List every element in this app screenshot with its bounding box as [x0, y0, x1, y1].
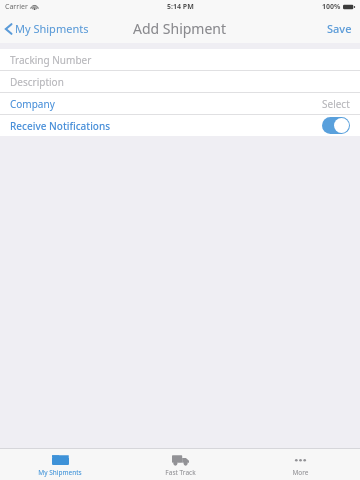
- staticText: Receive Notifications: [10, 119, 111, 133]
- staticText: My Shipments: [38, 468, 82, 477]
- staticText: Save: [327, 21, 352, 36]
- button[interactable]: Fast Track: [120, 451, 240, 479]
- staticText: Tracking Number: [10, 53, 92, 67]
- button[interactable]: Description: [0, 71, 360, 92]
- staticText: My Shipments: [15, 21, 89, 36]
- button[interactable]: My Shipments: [0, 17, 97, 40]
- staticText: More: [292, 468, 309, 477]
- staticText: 5:14 PM: [167, 2, 194, 12]
- staticText: Description: [10, 75, 64, 89]
- staticText: 100%: [322, 2, 341, 12]
- staticText: Carrier: [5, 2, 28, 12]
- staticText: Select: [322, 97, 350, 111]
- button[interactable]: Company: [0, 93, 360, 114]
- staticText: Add Shipment: [133, 19, 227, 38]
- button[interactable]: Tracking Number: [0, 49, 360, 70]
- button[interactable]: More: [240, 451, 360, 479]
- button[interactable]: Receive Notifications: [0, 115, 360, 136]
- staticText: Company: [10, 97, 55, 111]
- staticText: Fast Track: [165, 468, 196, 477]
- button[interactable]: Receive Notifications toggle: [322, 117, 350, 134]
- button[interactable]: My Shipments: [0, 450, 120, 479]
- button[interactable]: Save: [319, 17, 360, 40]
